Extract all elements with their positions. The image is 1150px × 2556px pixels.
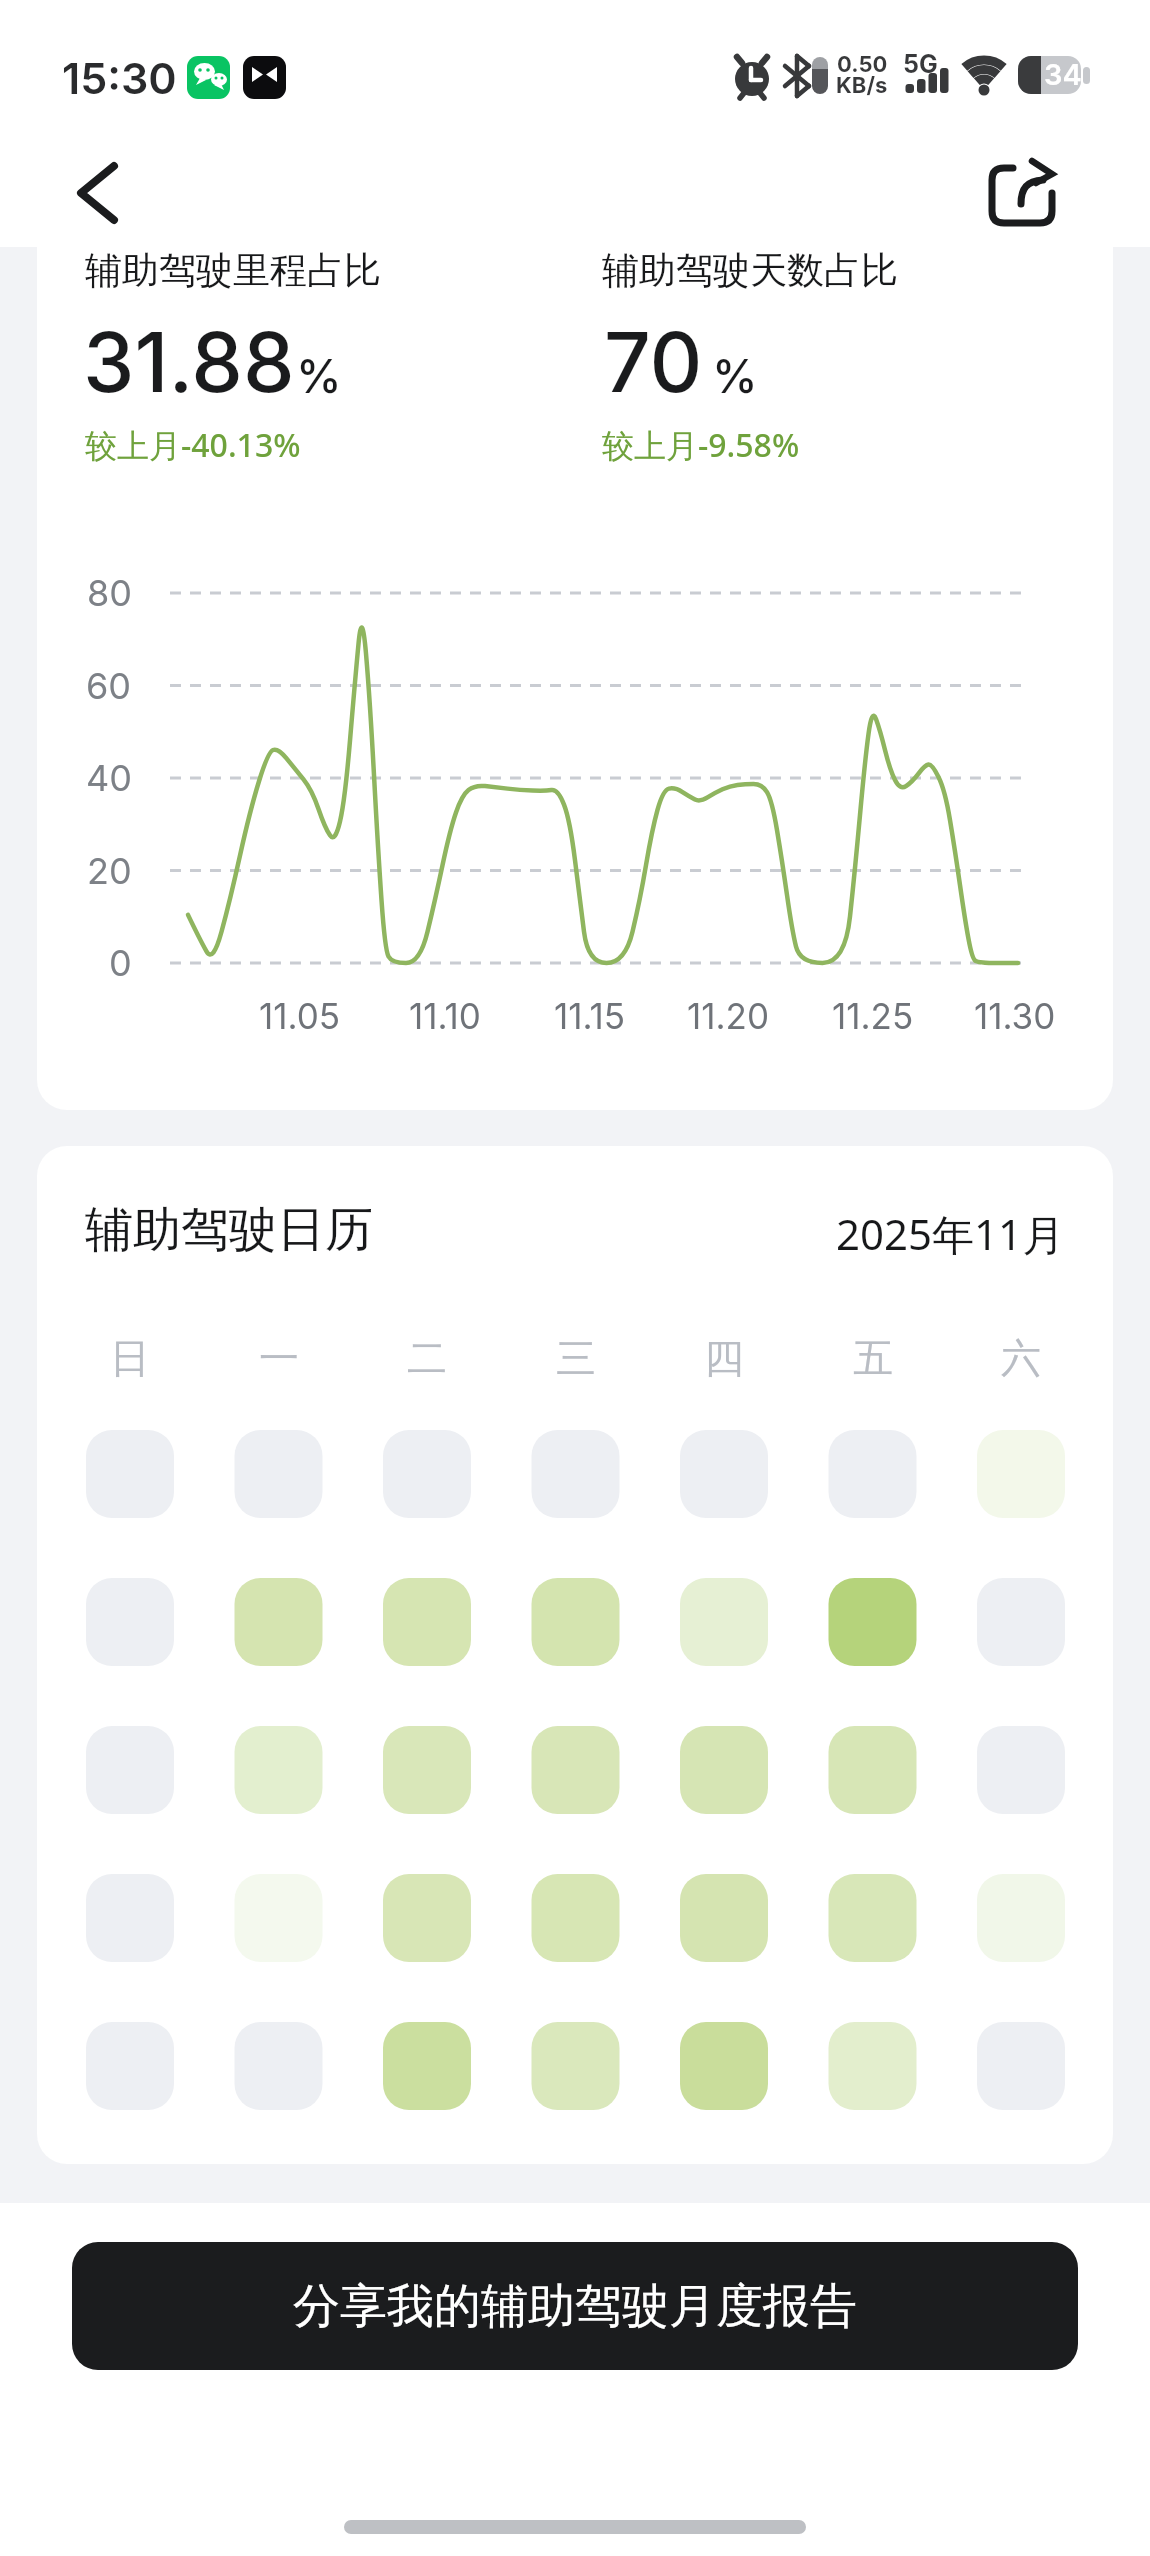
staticText: 一 — [259, 1333, 299, 1379]
staticText: % — [712, 348, 758, 404]
staticText: 分享我的辅助驾驶月度报告 — [293, 2277, 857, 2336]
staticText: 31.88 — [83, 313, 295, 412]
button[interactable] — [60, 150, 150, 240]
staticText: 二 — [407, 1333, 447, 1379]
staticText: 较上月-40.13% — [85, 423, 301, 467]
staticText: 日 — [110, 1333, 150, 1379]
staticText: 80 — [87, 571, 132, 615]
staticText: 三 — [556, 1333, 596, 1379]
button[interactable]: 分享我的辅助驾驶月度报告 — [72, 2242, 1078, 2370]
staticText: 11.05 — [259, 995, 341, 1037]
staticText: 辅助驾驶日历 — [85, 1200, 373, 1260]
staticText: 11.20 — [687, 995, 769, 1037]
staticText: 60 — [86, 664, 132, 708]
staticText: 11.30 — [974, 995, 1056, 1037]
staticText: 40 — [86, 756, 132, 800]
staticText: 11.15 — [554, 995, 626, 1037]
staticText: 11.10 — [409, 995, 481, 1037]
staticText: 较上月-9.58% — [602, 423, 800, 467]
staticText: 15:30 — [62, 52, 177, 104]
staticText: 辅助驾驶天数占比 — [602, 247, 898, 294]
staticText: 70 — [604, 313, 703, 412]
staticText: KB/s — [836, 72, 888, 99]
staticText: 2025年11月 — [836, 1205, 1065, 1257]
staticText: 六 — [1001, 1333, 1041, 1379]
staticText: 11.25 — [832, 995, 914, 1037]
staticText: 5G — [903, 49, 938, 79]
staticText: 辅助驾驶里程占比 — [85, 247, 381, 294]
staticText: 0.50 — [837, 51, 888, 78]
button[interactable] — [975, 150, 1070, 240]
staticText: % — [296, 348, 342, 404]
staticText: 五 — [853, 1333, 893, 1379]
staticText: 20 — [87, 849, 132, 893]
staticText: 34 — [1044, 57, 1082, 92]
staticText: 四 — [704, 1333, 744, 1379]
staticText: 0 — [109, 941, 132, 985]
